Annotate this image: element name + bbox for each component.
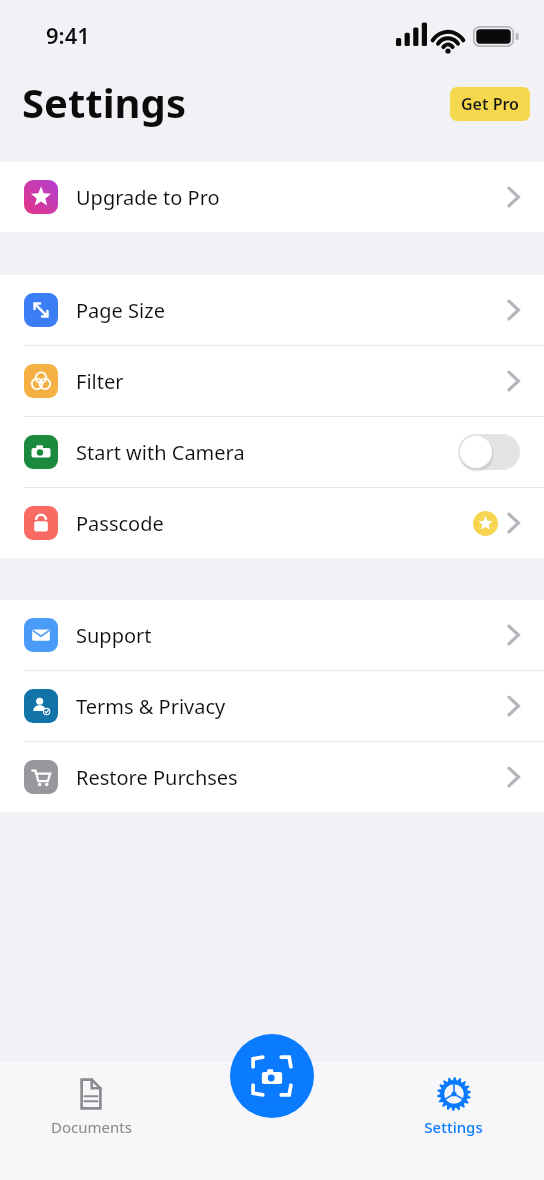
button[interactable]: Start with Camera — [0, 417, 544, 487]
staticText: Upgrade to Pro — [76, 184, 220, 211]
staticText: Start with Camera — [76, 439, 245, 466]
button[interactable]: Settings — [363, 1072, 544, 1141]
staticText: Support — [76, 622, 152, 649]
staticText: Get Pro — [461, 93, 519, 115]
staticText: Passcode — [76, 510, 164, 537]
button[interactable]: Get Pro — [450, 87, 530, 121]
staticText: Filter — [76, 368, 124, 395]
staticText: Settings — [22, 75, 186, 129]
staticText: Page Size — [76, 297, 165, 324]
staticText: Restore Purchses — [76, 764, 238, 791]
staticText: 9:41 — [46, 20, 90, 50]
button[interactable]: Filter — [0, 346, 544, 416]
staticText: Documents — [51, 1117, 132, 1137]
button[interactable]: Terms & Privacy — [0, 671, 544, 741]
staticText: Settings — [424, 1117, 483, 1137]
button[interactable]: Restore Purchses — [0, 742, 544, 812]
button[interactable]: Scan document — [230, 1034, 314, 1118]
button[interactable]: Support — [0, 600, 544, 670]
button[interactable]: Upgrade to Pro — [0, 162, 544, 232]
button[interactable]: Start with Camera — [458, 434, 520, 470]
button[interactable]: Page Size — [0, 275, 544, 345]
button[interactable]: Documents — [0, 1072, 182, 1141]
button[interactable]: Passcode — [0, 488, 544, 558]
staticText: Terms & Privacy — [76, 693, 226, 720]
